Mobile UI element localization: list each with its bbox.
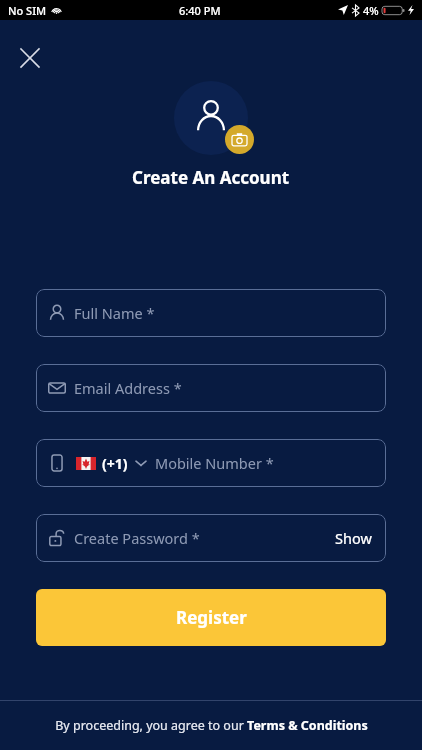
button[interactable]: (+1) <box>36 439 386 487</box>
button[interactable]: By proceeding, you agree to our Terms & … <box>0 701 422 750</box>
button[interactable]: Full Name * <box>36 289 386 337</box>
button[interactable]: Email Address * <box>36 364 386 412</box>
button[interactable]: Profile photo <box>174 81 248 155</box>
button[interactable]: Change photo <box>225 125 254 154</box>
staticText: Email Address * <box>74 378 182 398</box>
staticText: Create An Account <box>132 166 290 189</box>
button[interactable]: Register <box>36 589 386 646</box>
staticText: No SIM <box>8 3 47 18</box>
button[interactable]: Create Password * <box>36 514 386 562</box>
staticText: 6:40 PM <box>179 3 221 18</box>
staticText: 4% <box>363 3 379 18</box>
staticText: By proceeding, you agree to our Terms & … <box>55 717 368 734</box>
button[interactable]: Close <box>10 38 50 78</box>
staticText: Create Password * <box>74 528 200 548</box>
button[interactable]: Show <box>335 528 372 548</box>
staticText: Full Name * <box>74 303 155 323</box>
staticText: Mobile Number * <box>155 453 274 473</box>
staticText: Register <box>176 606 247 629</box>
staticText: (+1) <box>102 454 128 473</box>
